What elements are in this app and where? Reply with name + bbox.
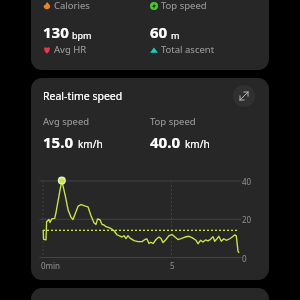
staticText: Total ascent	[161, 43, 215, 56]
button[interactable]: Expand chart	[233, 85, 255, 107]
staticText: 40	[242, 176, 252, 187]
staticText: 40.0	[150, 132, 180, 152]
staticText: Real-time speed	[43, 89, 123, 103]
staticText: m	[171, 29, 180, 41]
staticText: bpm	[72, 29, 92, 41]
staticText: Top speed	[161, 0, 207, 12]
staticText: 20	[242, 214, 252, 225]
staticText: Top speed	[150, 115, 196, 128]
staticText: 0	[242, 253, 247, 264]
staticText: 0min	[41, 260, 61, 271]
staticText: km/h	[78, 137, 103, 151]
staticText: 15.0	[43, 132, 73, 152]
staticText: Avg HR	[54, 43, 87, 56]
staticText: 5	[170, 260, 175, 271]
staticText: Calories	[54, 0, 90, 12]
staticText: 60	[150, 22, 168, 42]
staticText: Avg speed	[43, 115, 90, 128]
staticText: km/h	[185, 137, 210, 151]
staticText: 130	[43, 22, 69, 42]
